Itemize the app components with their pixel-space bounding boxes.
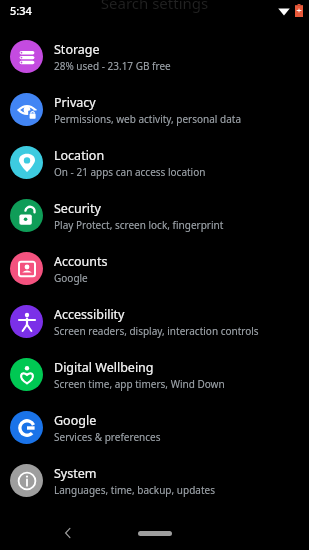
staticText: Screen readers, display, interaction con… bbox=[54, 324, 259, 338]
staticText: Languages, time, backup, updates bbox=[54, 483, 215, 497]
button[interactable]: Back bbox=[56, 521, 80, 545]
button[interactable]: Google bbox=[0, 401, 309, 454]
button[interactable]: Home bbox=[138, 531, 172, 536]
staticText: Google bbox=[54, 412, 97, 429]
button[interactable]: Accounts bbox=[0, 242, 309, 295]
staticText: Search settings bbox=[0, 0, 309, 13]
button[interactable]: Storage bbox=[0, 30, 309, 83]
staticText: Accessibility bbox=[54, 306, 125, 323]
staticText: Accounts bbox=[54, 253, 108, 270]
staticText: Privacy bbox=[54, 94, 96, 111]
staticText: Screen time, app timers, Wind Down bbox=[54, 377, 225, 391]
staticText: System bbox=[54, 465, 97, 482]
staticText: Location bbox=[54, 147, 105, 164]
button[interactable]: System bbox=[0, 454, 309, 507]
button[interactable]: Digital Wellbeing bbox=[0, 348, 309, 401]
staticText: Play Protect, screen lock, fingerprint bbox=[54, 218, 224, 232]
staticText: On - 21 apps can access location bbox=[54, 165, 206, 179]
button[interactable]: Privacy bbox=[0, 83, 309, 136]
staticText: Services & preferences bbox=[54, 430, 161, 444]
staticText: Storage bbox=[54, 41, 100, 58]
staticText: Permissions, web activity, personal data bbox=[54, 112, 242, 126]
staticText: 28% used - 23.17 GB free bbox=[54, 59, 171, 73]
staticText: Digital Wellbeing bbox=[54, 359, 154, 376]
staticText: Google bbox=[54, 271, 88, 285]
button[interactable]: Accessibility bbox=[0, 295, 309, 348]
staticText: 5:34 bbox=[10, 3, 32, 18]
button[interactable]: Security bbox=[0, 189, 309, 242]
staticText: Security bbox=[54, 200, 101, 217]
button[interactable]: Location bbox=[0, 136, 309, 189]
